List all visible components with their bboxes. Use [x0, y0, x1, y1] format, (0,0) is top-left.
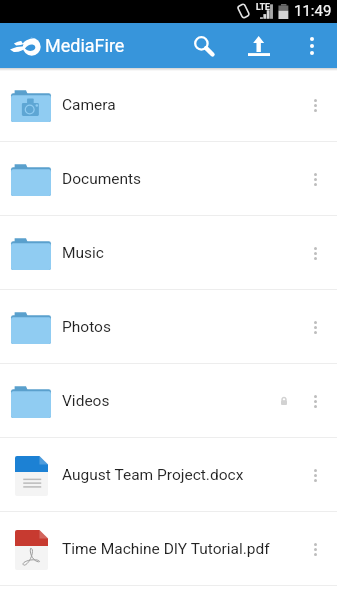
staticText: Documents [62, 170, 300, 188]
button[interactable]: More options [300, 302, 330, 352]
button[interactable]: More options [300, 228, 330, 278]
button[interactable]: Camera [0, 68, 337, 142]
staticText: Photos [62, 318, 300, 336]
button[interactable]: More options [291, 23, 332, 68]
button[interactable]: Time Machine DIY Tutorial.pdf [0, 512, 337, 586]
button[interactable]: More options [300, 450, 330, 500]
button[interactable]: Music [0, 216, 337, 290]
staticText: Camera [62, 96, 300, 114]
staticText: Music [62, 244, 300, 262]
staticText: 11:49 [294, 2, 332, 20]
staticText: MediaFire [45, 35, 125, 56]
button[interactable]: Photos [0, 290, 337, 364]
staticText: LTE [256, 2, 270, 12]
button[interactable]: Upload [236, 23, 281, 68]
staticText: Time Machine DIY Tutorial.pdf [62, 540, 300, 558]
staticText: August Team Project.docx [62, 466, 300, 484]
button[interactable]: More options [300, 376, 330, 426]
button[interactable]: Search [181, 23, 226, 68]
button[interactable]: More options [300, 154, 330, 204]
staticText: Videos [62, 392, 281, 410]
button[interactable]: Documents [0, 142, 337, 216]
button[interactable]: August Team Project.docx [0, 438, 337, 512]
button[interactable]: Videos [0, 364, 337, 438]
button[interactable]: More options [300, 80, 330, 130]
button[interactable]: More options [300, 524, 330, 574]
